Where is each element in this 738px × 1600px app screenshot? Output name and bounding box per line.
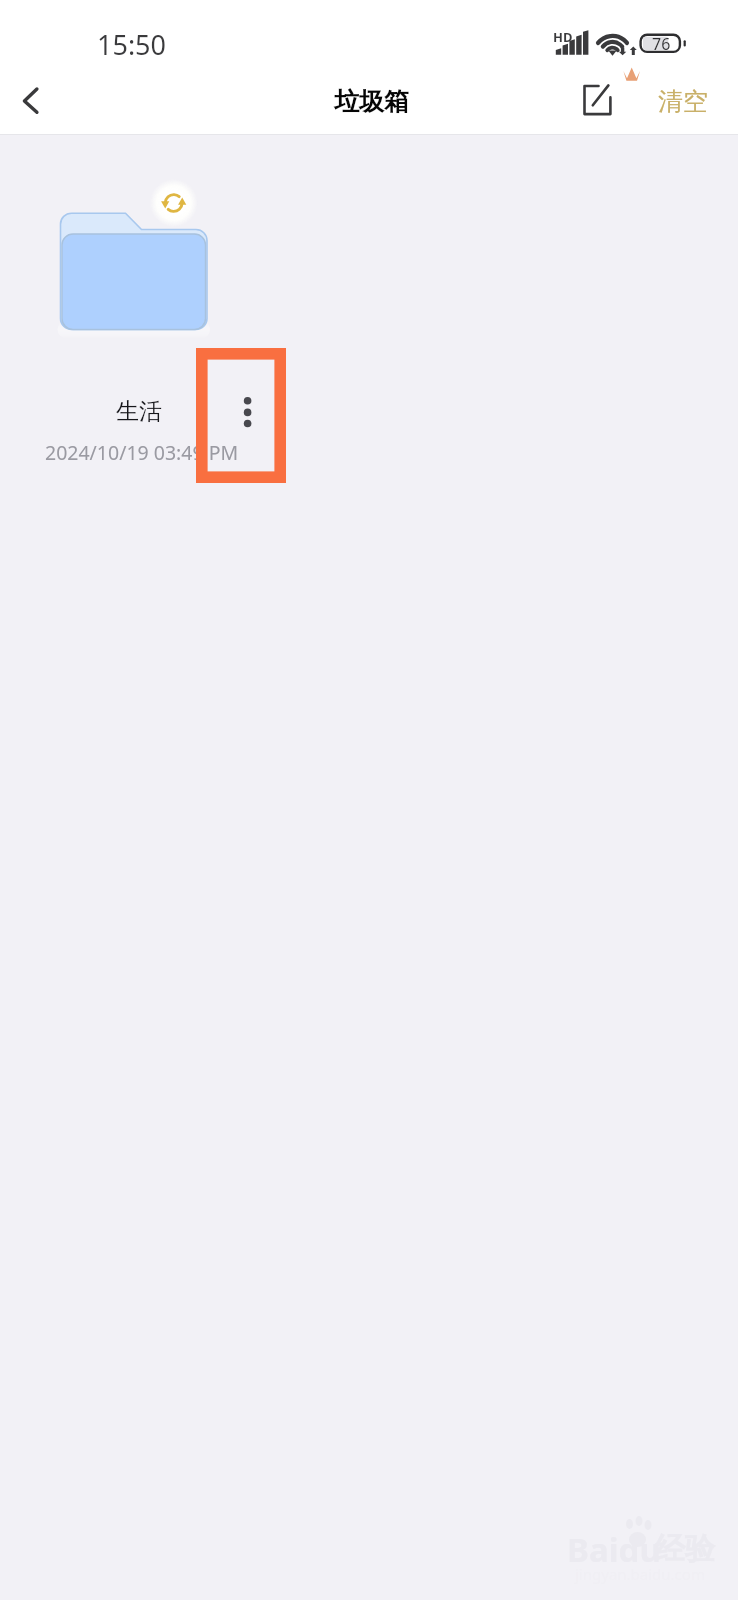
staticText: 15:50 <box>97 26 167 63</box>
button[interactable]: 清空 <box>614 70 724 128</box>
button[interactable]: Edit <box>570 76 624 128</box>
staticText: 2024/10/19 03:49 PM <box>45 439 239 466</box>
button[interactable]: Back <box>0 76 62 128</box>
staticText: 垃圾箱 <box>334 86 409 117</box>
staticText: 76 <box>652 33 671 55</box>
staticText: 经验 <box>655 1530 715 1568</box>
staticText: Baidu <box>567 1527 661 1572</box>
staticText: 清空 <box>658 86 708 117</box>
staticText: 生活 <box>116 397 162 426</box>
button[interactable]: 生活 <box>0 150 300 490</box>
staticText: HD <box>553 28 573 46</box>
button[interactable]: More options <box>222 376 274 448</box>
